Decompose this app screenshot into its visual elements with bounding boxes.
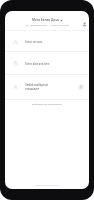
button[interactable]: Select date and time [5, 52, 89, 74]
staticText: Мега Белая Дача [32, 18, 59, 22]
button[interactable]: Select services [5, 31, 89, 51]
staticText: Любой свободный специалист [25, 83, 48, 91]
staticText: ул. Пролетарская, 1 · 2 мин. от метро [26, 23, 69, 26]
button[interactable]: Мега Белая Дача [32, 18, 63, 22]
staticText: Select services [25, 40, 43, 43]
button[interactable]: Любой свободный специалист [5, 75, 89, 99]
button[interactable]: Account [81, 21, 87, 27]
staticText: Select date and time [25, 62, 50, 65]
staticText: Работаем по предзаписи [5, 102, 89, 105]
